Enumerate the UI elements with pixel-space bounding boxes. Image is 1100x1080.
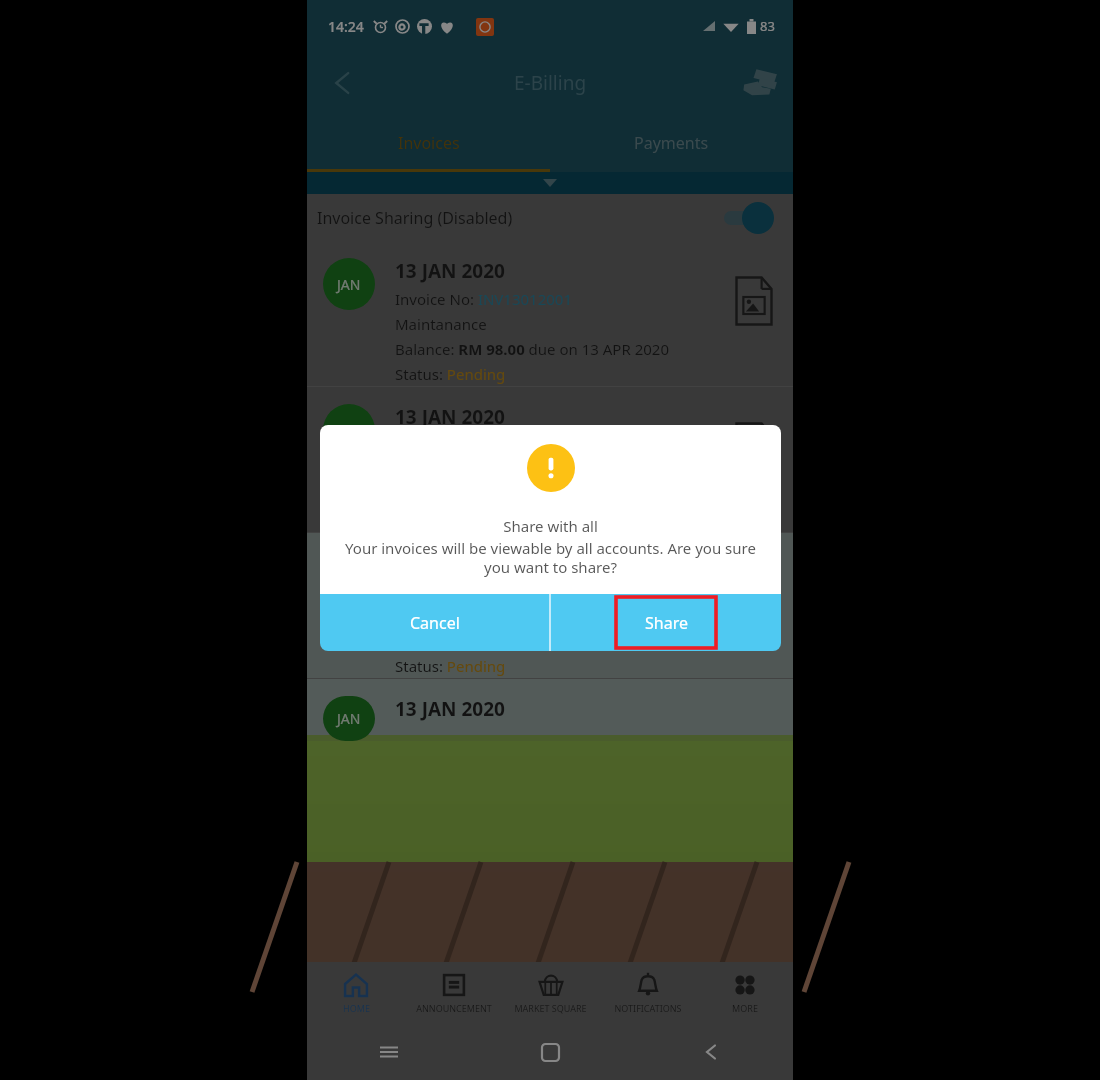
- staticText: Balance: RM 98.00 due on 13 APR 2020: [395, 339, 669, 359]
- button[interactable]: MARKET SQUARE: [502, 962, 599, 1024]
- staticText: ANNOUNCEMENT: [416, 1002, 492, 1014]
- staticText: JAN: [337, 275, 361, 294]
- button[interactable]: Back: [689, 1030, 733, 1074]
- staticText: NOTIFICATIONS: [614, 1002, 682, 1014]
- staticText: Status: Pending: [395, 510, 506, 530]
- button[interactable]: JAN: [307, 387, 793, 532]
- staticText: Invoice No: INV13012002: [395, 435, 573, 455]
- staticText: 83: [760, 17, 775, 35]
- staticText: Share with all: [503, 516, 598, 536]
- staticText: JAN: [337, 421, 361, 440]
- button[interactable]: HOME: [307, 962, 405, 1024]
- button[interactable]: Invoice sharing toggle: [721, 201, 777, 235]
- button[interactable]: View invoice document: [735, 568, 773, 618]
- staticText: Status: Pending: [395, 364, 506, 384]
- button[interactable]: [307, 172, 793, 194]
- button[interactable]: Home: [528, 1030, 572, 1074]
- button[interactable]: NOTIFICATIONS: [599, 962, 696, 1024]
- button[interactable]: JAN: [307, 679, 793, 741]
- button[interactable]: Back: [319, 59, 367, 107]
- staticText: Status: Pending: [395, 656, 506, 676]
- staticText: MORE: [732, 1002, 758, 1014]
- staticText: 14:24: [328, 17, 364, 36]
- staticText: Invoices: [398, 132, 460, 154]
- staticText: Invoice Sharing (Disabled): [317, 207, 513, 229]
- button[interactable]: Invoices: [307, 114, 550, 172]
- staticText: E-Billing: [514, 70, 587, 96]
- button[interactable]: JAN: [307, 241, 793, 386]
- staticText: HOME: [343, 1002, 370, 1014]
- staticText: 13 JAN 2020: [395, 404, 505, 430]
- staticText: Share: [645, 612, 688, 634]
- button[interactable]: View invoice document: [735, 276, 773, 326]
- button[interactable]: MORE: [696, 962, 793, 1024]
- staticText: MARKET SQUARE: [514, 1002, 587, 1014]
- button[interactable]: Payments: [550, 114, 793, 172]
- staticText: Payments: [634, 132, 709, 154]
- staticText: 13 JAN 2020: [395, 696, 505, 722]
- staticText: Maintanance: [395, 314, 487, 334]
- staticText: Mac: [395, 606, 425, 626]
- staticText: Invoice No: INV13012002: [395, 581, 573, 601]
- staticText: Balance: RM 100.00 due on 13 APR 2020: [395, 485, 678, 505]
- staticText: Cancel: [410, 612, 460, 634]
- button[interactable]: Share: [616, 597, 716, 648]
- button[interactable]: Payments: [735, 58, 785, 108]
- button[interactable]: Recents: [367, 1030, 411, 1074]
- button[interactable]: Cancel: [320, 594, 549, 651]
- button[interactable]: View invoice document: [735, 422, 773, 472]
- button[interactable]: JAN: [307, 533, 793, 678]
- staticText: Invoice No: INV13012001: [395, 289, 573, 309]
- staticText: 13 JAN 2020: [395, 550, 505, 576]
- staticText: Your invoices will be viewable by all ac…: [334, 538, 767, 577]
- staticText: 13 JAN 2020: [395, 258, 505, 284]
- staticText: Balance: RM 100.00 due on 13 APR 2020: [395, 631, 678, 651]
- staticText: JAN: [337, 709, 361, 728]
- button[interactable]: ANNOUNCEMENT: [405, 962, 502, 1024]
